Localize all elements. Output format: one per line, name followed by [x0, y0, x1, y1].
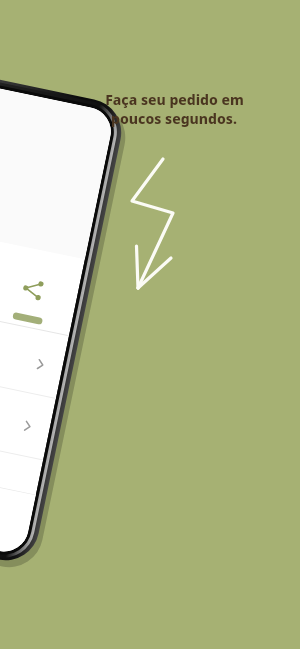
- button[interactable]: Compartilhar: [6, 255, 54, 303]
- staticText: poucos segundos.: [111, 109, 237, 128]
- button[interactable]: Meu pedido: [20, 520, 82, 566]
- staticText: Faça seu pedido em: [105, 90, 244, 109]
- other: Arrow pointing to the app: [0, 0, 300, 649]
